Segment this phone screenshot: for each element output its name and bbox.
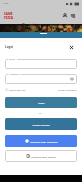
staticText: or [39,111,42,114]
staticText: Remember me [9,88,26,91]
staticText: Login [5,45,14,49]
button[interactable] [5,74,77,84]
staticText: Email [9,57,16,60]
staticText: SAME [4,12,13,16]
button[interactable] [5,59,77,69]
button[interactable]: Account [62,13,68,19]
button[interactable]: Show password [70,77,74,81]
button[interactable]: Create account [5,118,77,130]
button[interactable]: Continue with Google [5,150,77,162]
staticText: PIZZA [4,16,14,20]
button[interactable]: Forgot password [58,88,77,91]
staticText: Continue with Google [31,155,56,158]
button[interactable]: Continue with Facebook [5,135,77,147]
staticText: 11:06 [3,2,9,5]
button[interactable]: Login [5,97,77,108]
staticText: Password [9,72,20,75]
staticText: Continue with Facebook [30,140,58,143]
button[interactable]: Menu [70,13,76,19]
staticText: Login [38,101,45,104]
button[interactable]: Remember me [5,88,26,91]
staticText: Create account [32,123,50,126]
button[interactable]: Close [69,45,74,50]
